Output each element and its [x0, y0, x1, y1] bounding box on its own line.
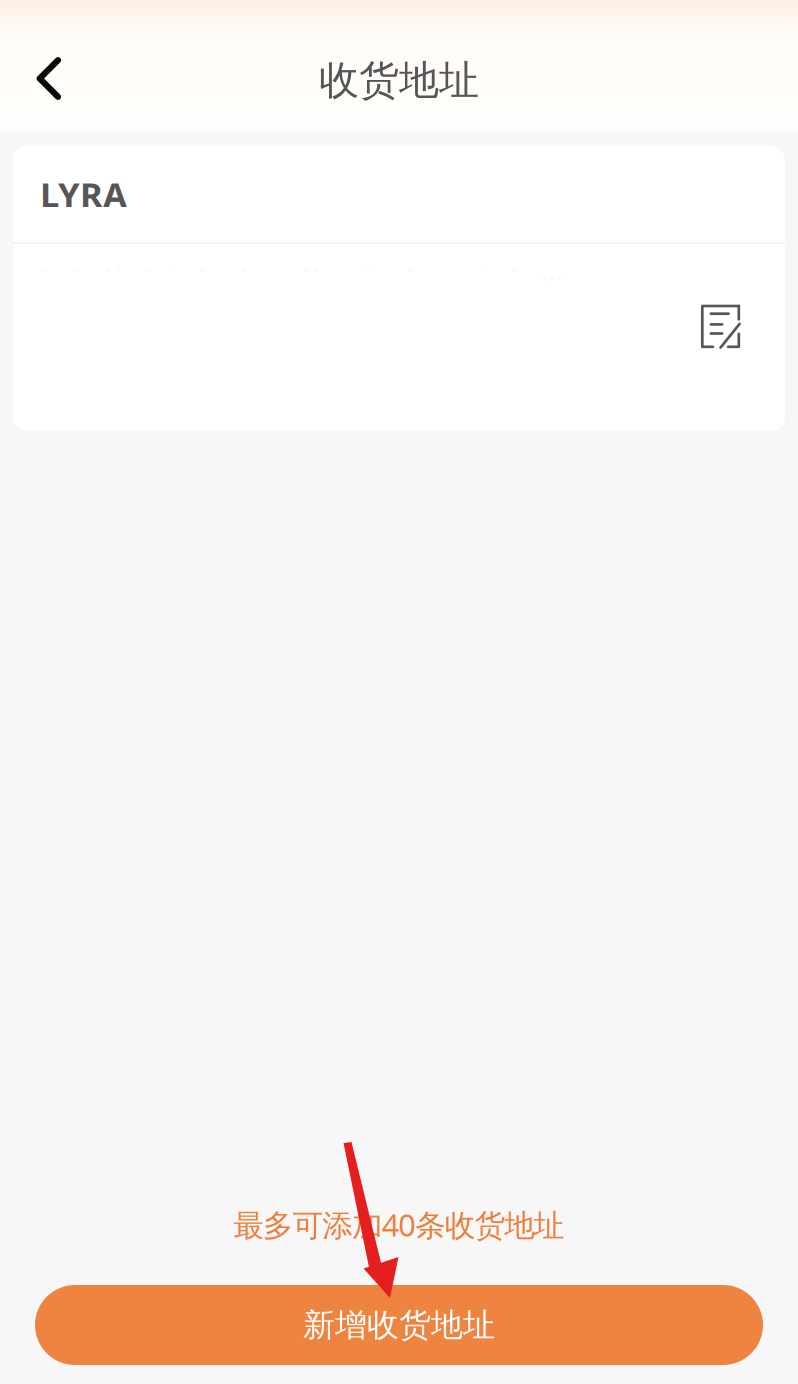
button[interactable]: Back	[13, 40, 85, 116]
staticText: LYRA	[40, 171, 127, 217]
button[interactable]: 新增收货地址	[35, 1285, 763, 1365]
staticText: 收货地址	[319, 56, 479, 105]
button[interactable]: LYRA	[13, 146, 785, 431]
staticText: 新增收货地址	[303, 1305, 495, 1345]
staticText: 最多可添加40条收货地址	[233, 1204, 565, 1245]
